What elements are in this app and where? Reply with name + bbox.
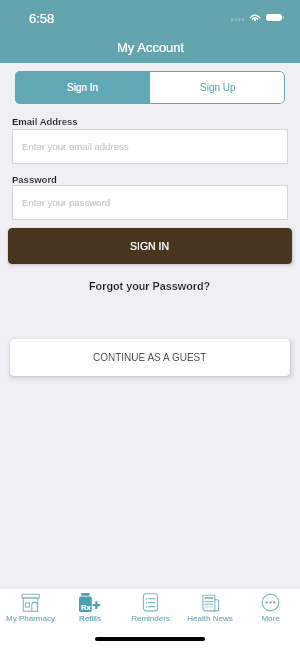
staticText: Rx: [81, 603, 91, 611]
staticText: Refills: [79, 614, 101, 623]
staticText: SIGN IN: [130, 240, 170, 252]
button[interactable]: Enter your email address: [12, 129, 288, 164]
button[interactable]: More: [240, 589, 300, 624]
staticText: Reminders: [131, 614, 170, 623]
staticText: Forgot your Password?: [89, 280, 211, 292]
button[interactable]: My Pharmacy: [0, 589, 60, 624]
staticText: Sign In: [67, 82, 99, 93]
staticText: CONTINUE AS A GUEST: [93, 352, 207, 363]
button[interactable]: Enter your password: [12, 185, 288, 220]
staticText: Health News: [187, 614, 233, 623]
button[interactable]: Health News: [180, 589, 240, 624]
button[interactable]: Sign In: [15, 71, 150, 104]
staticText: Email Address: [12, 116, 78, 127]
button[interactable]: SIGN IN: [8, 228, 292, 264]
staticText: Enter your password: [22, 197, 110, 208]
button[interactable]: Sign Up: [150, 71, 285, 104]
staticText: 6:58: [29, 11, 55, 26]
button[interactable]: Reminders: [120, 589, 180, 624]
staticText: More: [261, 614, 280, 623]
button[interactable]: Forgot your Password?: [0, 279, 300, 293]
button[interactable]: Rx: [60, 589, 120, 624]
staticText: Sign Up: [200, 82, 236, 93]
staticText: My Account: [117, 40, 185, 55]
staticText: Enter your email address: [22, 141, 129, 152]
staticText: Password: [12, 174, 57, 185]
button[interactable]: CONTINUE AS A GUEST: [10, 339, 290, 376]
staticText: My Pharmacy: [6, 614, 55, 623]
